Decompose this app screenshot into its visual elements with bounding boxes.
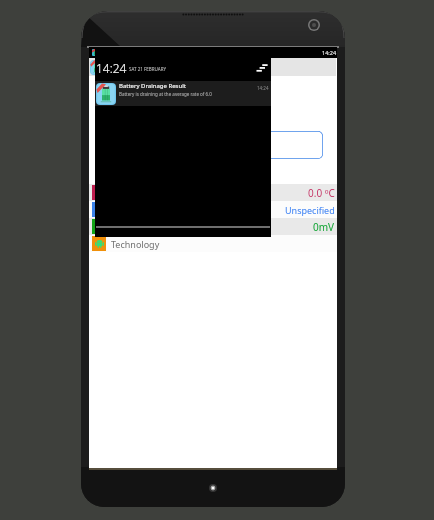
button[interactable]: Battery Drainage Result	[95, 81, 271, 106]
staticText: 14:24	[257, 85, 269, 91]
button[interactable]: Collapse notification shade	[95, 222, 271, 232]
button[interactable]: Quick settings	[256, 62, 268, 73]
staticText: Battery Drainage Result	[119, 82, 186, 90]
staticText: SAT 21 FEBRUARY	[129, 66, 167, 72]
button[interactable]: Technology	[89, 235, 337, 252]
button[interactable]: Temperature	[89, 184, 337, 201]
staticText: 14:24	[96, 60, 127, 76]
button[interactable]: Status	[89, 201, 337, 218]
staticText: 0mV	[313, 220, 335, 234]
button[interactable]: Voltage	[89, 218, 337, 235]
staticText: Technology	[111, 238, 160, 250]
staticText: 14:24	[322, 49, 337, 56]
button[interactable]: Refresh	[97, 131, 323, 159]
staticText: Battery is draining at the average rate …	[119, 91, 212, 97]
staticText: 0.0 ºC	[308, 186, 335, 200]
staticText: Voltage	[111, 221, 143, 233]
staticText: Unspecified	[285, 204, 335, 216]
